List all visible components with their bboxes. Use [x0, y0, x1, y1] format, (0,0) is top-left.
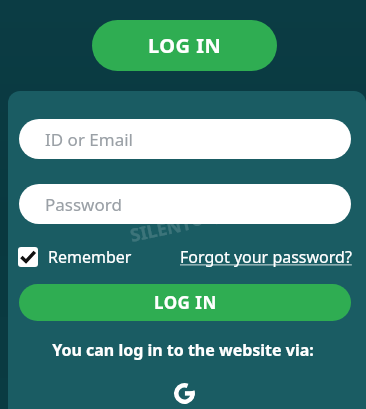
- staticText: Remember: [48, 246, 132, 268]
- button[interactable]: Password: [19, 184, 351, 224]
- staticText: Password: [45, 193, 122, 216]
- button[interactable]: Forgot your password?: [180, 246, 352, 268]
- button[interactable]: Log in with Google: [172, 381, 196, 405]
- staticText: ID or Email: [45, 128, 133, 151]
- button[interactable]: LOG IN: [92, 20, 277, 71]
- button[interactable]: Remember: [18, 246, 136, 268]
- staticText: LOG IN: [154, 291, 217, 314]
- staticText: Forgot your password?: [180, 246, 352, 268]
- staticText: LOG IN: [148, 32, 222, 59]
- staticText: SILENT: [128, 210, 195, 248]
- staticText: BET: [211, 199, 248, 230]
- staticText: You can log in to the website via:: [52, 339, 314, 361]
- button[interactable]: LOG IN: [19, 284, 351, 321]
- button[interactable]: ID or Email: [19, 119, 351, 159]
